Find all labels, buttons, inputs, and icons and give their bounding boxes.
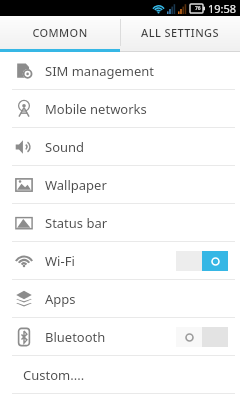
button[interactable]: Switch on xyxy=(176,251,228,271)
staticText: Wallpaper xyxy=(45,176,107,194)
button[interactable]: Wi-Fi xyxy=(0,242,240,279)
staticText: 76 xyxy=(195,5,201,12)
button[interactable]: Status bar xyxy=(0,204,240,241)
button[interactable]: Wallpaper xyxy=(0,166,240,203)
staticText: 19:58 xyxy=(208,1,237,16)
button[interactable]: Apps xyxy=(0,280,240,317)
staticText: Bluetooth xyxy=(45,328,106,346)
staticText: Mobile networks xyxy=(45,100,147,118)
staticText: COMMON xyxy=(32,25,88,40)
button[interactable]: Custom.... xyxy=(0,356,240,393)
staticText: ALL SETTINGS xyxy=(141,25,219,40)
button[interactable]: Bluetooth xyxy=(0,318,240,355)
staticText: Sound xyxy=(45,138,85,156)
button[interactable]: Sound xyxy=(0,128,240,165)
button[interactable]: SIM management xyxy=(0,52,240,89)
staticText: Wi-Fi xyxy=(45,252,75,270)
staticText: Apps xyxy=(45,290,76,308)
staticText: SIM management xyxy=(45,62,155,80)
button[interactable]: COMMON xyxy=(0,16,120,52)
button[interactable]: ALL SETTINGS xyxy=(120,16,240,52)
staticText: Custom.... xyxy=(23,366,85,384)
button[interactable]: Mobile networks xyxy=(0,90,240,127)
button[interactable]: Switch off xyxy=(176,327,228,347)
staticText: Status bar xyxy=(45,214,108,232)
